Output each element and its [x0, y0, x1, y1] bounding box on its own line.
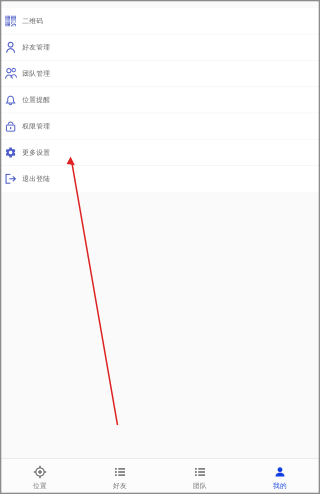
- staticText: 二维码: [22, 17, 43, 25]
- staticText: 团队管理: [22, 69, 50, 78]
- staticText: 权限管理: [22, 122, 50, 130]
- staticText: 位置提醒: [22, 96, 50, 104]
- staticText: 位置: [33, 482, 47, 490]
- button[interactable]: 更多设置: [0, 140, 320, 165]
- button[interactable]: 位置: [0, 459, 80, 491]
- staticText: 好友: [113, 482, 127, 490]
- button[interactable]: 二维码: [0, 8, 320, 34]
- staticText: 退出登陆: [22, 175, 50, 183]
- staticText: 团队: [193, 482, 207, 490]
- button[interactable]: 权限管理: [0, 113, 320, 139]
- staticText: 更多设置: [22, 148, 50, 157]
- button[interactable]: 位置提醒: [0, 87, 320, 113]
- button[interactable]: 退出登陆: [0, 166, 320, 192]
- button[interactable]: 好友: [80, 459, 160, 491]
- button[interactable]: 团队: [160, 459, 240, 491]
- staticText: 我的: [273, 482, 287, 490]
- button[interactable]: 团队管理: [0, 61, 320, 86]
- button[interactable]: 我的: [240, 459, 320, 491]
- button[interactable]: 好友管理: [0, 34, 320, 60]
- staticText: 好友管理: [22, 43, 50, 51]
